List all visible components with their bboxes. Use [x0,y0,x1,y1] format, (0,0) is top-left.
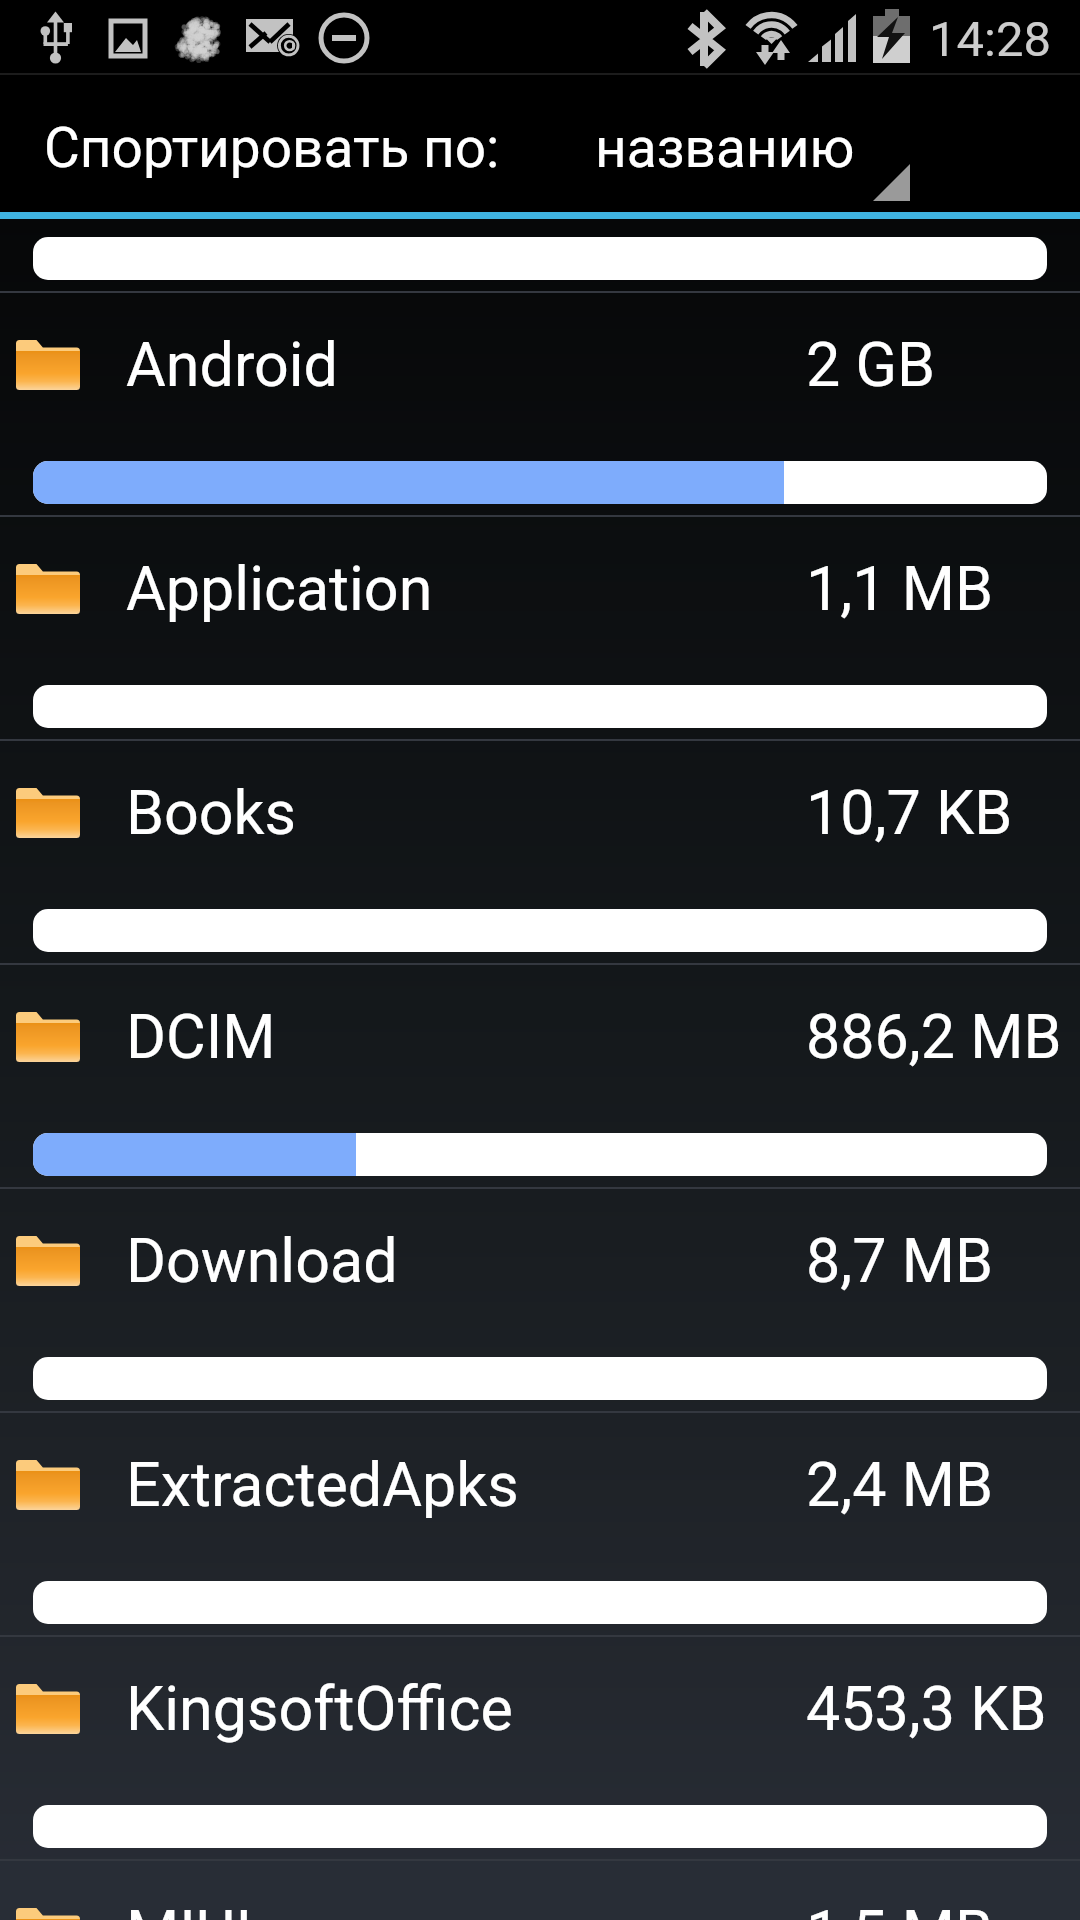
staticText: MIUI [126,1897,252,1920]
other: Change sort order [873,164,910,201]
button[interactable]: DCIM [0,965,1080,1189]
button[interactable]: Books [0,741,1080,965]
button[interactable]: Android [0,293,1080,517]
staticText: 8,7 MB [806,1225,993,1296]
staticText: 886,2 MB [806,1001,1062,1072]
staticText: DCIM [126,1001,276,1072]
staticText: ExtractedApks [126,1449,519,1520]
button[interactable]: Application [0,517,1080,741]
button[interactable]: Download [0,1189,1080,1413]
staticText: 1,5 MB [806,1897,993,1920]
staticText: 453,3 KB [806,1673,1047,1744]
button[interactable]: ExtractedApks [0,1413,1080,1637]
button[interactable]: KingsoftOffice [0,1637,1080,1861]
staticText: Спортировать по: [44,116,500,180]
staticText: Download [126,1225,398,1296]
staticText: 2 GB [806,329,935,400]
staticText: 1,1 MB [806,553,993,624]
staticText: KingsoftOffice [126,1673,513,1744]
staticText: названию [595,116,855,180]
button[interactable]: названию [560,75,960,212]
staticText: 14:28 [929,11,1052,68]
staticText: Android [126,329,338,400]
staticText: Application [126,553,433,624]
staticText: 2,4 MB [806,1449,993,1520]
staticText: 10,7 KB [806,777,1013,848]
staticText: Books [126,777,296,848]
button[interactable]: MIUI [0,1861,1080,1920]
